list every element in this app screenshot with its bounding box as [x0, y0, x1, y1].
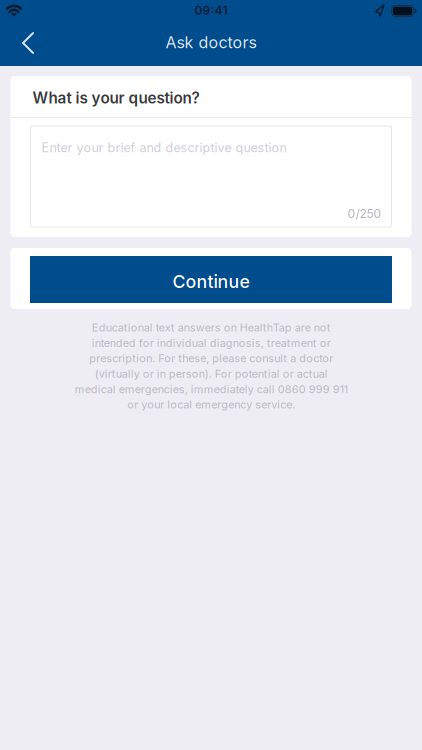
staticText: Educational text answers on HealthTap ar…	[74, 321, 347, 411]
staticText: Continue	[172, 271, 249, 292]
staticText: Ask doctors	[165, 33, 256, 52]
button[interactable]: Enter your brief and descriptive questio…	[30, 126, 391, 227]
button[interactable]: Back	[5, 24, 51, 66]
staticText: 0/250	[347, 206, 381, 221]
staticText: 09:41	[194, 3, 227, 18]
staticText: What is your question?	[32, 89, 199, 107]
button[interactable]: Continue	[30, 256, 392, 303]
staticText: Enter your brief and descriptive questio…	[41, 140, 286, 155]
